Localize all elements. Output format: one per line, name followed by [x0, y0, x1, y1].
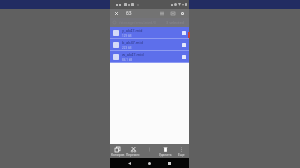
button[interactable]: Sort [157, 9, 166, 18]
button[interactable]: Перемес [125, 144, 141, 158]
staticText: 63 [126, 10, 132, 17]
button[interactable]: y_ak47.mid [110, 27, 189, 39]
button[interactable]: Settings [178, 9, 187, 18]
staticText: b_ak47.mid [122, 40, 143, 45]
button[interactable]: b_ak47.mid [110, 39, 189, 51]
staticText: y_ak47.mid [122, 28, 143, 33]
staticText: 3 selected [166, 20, 184, 25]
button[interactable]: Recents [165, 159, 174, 168]
staticText: Копиров [111, 153, 125, 157]
button[interactable]: Еще [173, 144, 189, 158]
staticText: 223 kB [122, 46, 132, 50]
staticText: Удалить [159, 153, 172, 157]
staticText: Еще [178, 153, 185, 157]
staticText: Перемес [126, 153, 140, 157]
staticText: 84.1 kB [122, 58, 133, 62]
button[interactable]: Select all [168, 9, 177, 18]
button[interactable]: Копиров [110, 144, 125, 158]
button[interactable]: Home [145, 159, 154, 168]
staticText: w_ak47.mid [122, 52, 144, 57]
button[interactable]: Удалить [157, 144, 173, 158]
button[interactable]: Close [112, 9, 121, 18]
staticText: 129 kB [122, 34, 132, 38]
button[interactable]: Back [125, 159, 134, 168]
staticText: /storage/emulated/0 [119, 20, 156, 25]
button[interactable]: w_ak47.mid [110, 51, 189, 63]
